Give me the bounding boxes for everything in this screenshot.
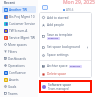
button[interactable]: TW Scrum-A <box>2 27 36 34</box>
staticText: Dashboards <box>8 57 27 61</box>
staticText: Confluence <box>9 71 26 75</box>
staticText: More spaces <box>8 43 27 47</box>
button[interactable]: Filters <box>2 48 36 55</box>
staticText: Recent <box>4 1 15 5</box>
button[interactable]: Teams <box>2 90 36 97</box>
button[interactable]: More actions <box>42 5 48 10</box>
button[interactable]: Space settings <box>39 51 92 59</box>
button[interactable]: Operations <box>2 62 36 69</box>
staticText: TW Scrum-A <box>9 29 28 33</box>
button[interactable]: Delete space <box>39 70 92 78</box>
staticText: Goals <box>8 85 17 89</box>
staticText: Assets <box>9 78 19 82</box>
button[interactable]: More spaces <box>2 41 36 48</box>
button[interactable]: Service Mgmt TW <box>2 34 36 41</box>
button[interactable]: Add people <box>39 21 92 29</box>
button[interactable]: Set space background <box>39 43 92 51</box>
button[interactable]: Bis Proj Mgmt 10 <box>2 13 36 20</box>
staticText: Add people <box>47 23 65 27</box>
staticText: Customer Service <box>9 22 36 26</box>
staticText: Filters <box>8 50 18 54</box>
staticText: Bis Proj Mgmt 10 <box>9 15 35 19</box>
staticText: Teams <box>8 92 18 96</box>
staticText: Another TW Kanban <box>9 8 36 12</box>
staticText: Delete space <box>47 72 67 76</box>
button[interactable]: Assets <box>2 76 36 83</box>
button[interactable]: Archive space <box>39 62 92 70</box>
button[interactable]: Customer Service <box>2 20 36 27</box>
staticText: Add to starred <box>47 16 69 20</box>
staticText: Team-managed <box>48 87 69 91</box>
staticText: Mon 29, 2025 <box>63 0 95 6</box>
button[interactable]: Goals <box>2 83 36 90</box>
button[interactable]: Save as template <box>39 29 92 43</box>
button[interactable]: Confluence <box>2 69 36 76</box>
staticText: ATK-6 <box>66 8 74 12</box>
staticText: PREMIUM <box>70 65 81 68</box>
staticText: Set space background <box>47 45 80 49</box>
staticText: PREMIUM <box>48 37 59 40</box>
button[interactable]: Another TW Kanban <box>2 6 36 13</box>
staticText: Software space <box>48 83 72 87</box>
staticText: Archive space <box>47 64 68 68</box>
staticText: Service Mgmt TW <box>9 36 36 40</box>
staticText: Space settings <box>47 53 69 57</box>
button[interactable]: Add to starred <box>39 14 92 21</box>
button[interactable]: Dashboards <box>2 55 36 62</box>
staticText: Operations <box>8 64 25 68</box>
staticText: Save as template <box>47 33 73 37</box>
